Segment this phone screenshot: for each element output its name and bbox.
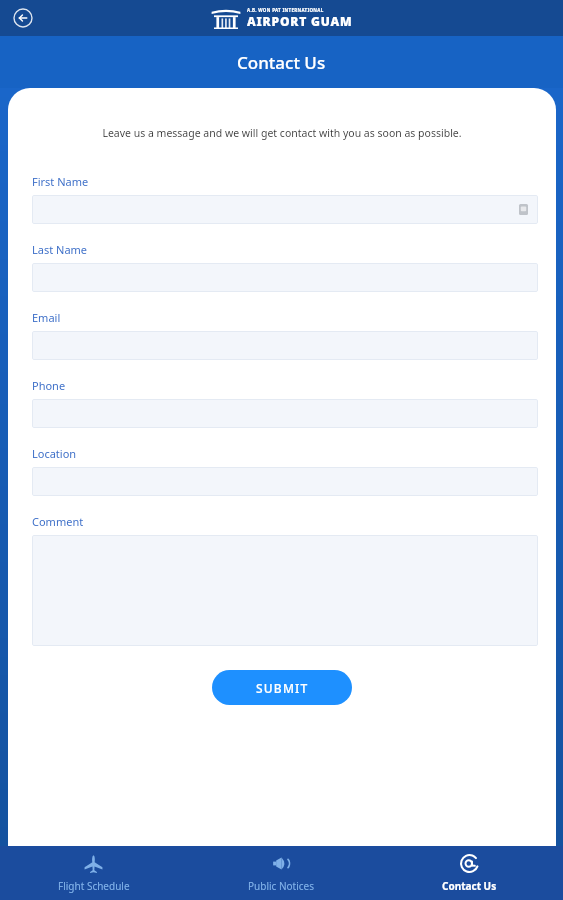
- staticText: Contact Us: [442, 879, 497, 893]
- button[interactable]: [32, 399, 538, 428]
- staticText: Phone: [32, 378, 66, 393]
- staticText: Public Notices: [248, 879, 315, 893]
- staticText: Email: [32, 310, 61, 325]
- staticText: First Name: [32, 174, 89, 189]
- button[interactable]: [32, 195, 538, 224]
- button[interactable]: Public Notices: [187, 846, 375, 900]
- button[interactable]: [32, 467, 538, 496]
- staticText: Comment: [32, 514, 84, 529]
- button[interactable]: Contact Us: [375, 846, 563, 900]
- staticText: Flight Schedule: [58, 879, 130, 893]
- staticText: Leave us a message and we will get conta…: [32, 126, 532, 140]
- button[interactable]: [32, 263, 538, 292]
- staticText: AIRPORT GUAM: [247, 13, 353, 29]
- staticText: Contact Us: [237, 51, 326, 74]
- button[interactable]: [32, 331, 538, 360]
- staticText: A.B. WON PAT INTERNATIONAL: [247, 7, 324, 13]
- button[interactable]: Flight Schedule: [0, 846, 187, 900]
- button[interactable]: Back: [10, 5, 36, 31]
- staticText: SUBMIT: [256, 680, 309, 696]
- staticText: Last Name: [32, 242, 88, 257]
- staticText: Location: [32, 446, 77, 461]
- button[interactable]: SUBMIT: [212, 670, 352, 705]
